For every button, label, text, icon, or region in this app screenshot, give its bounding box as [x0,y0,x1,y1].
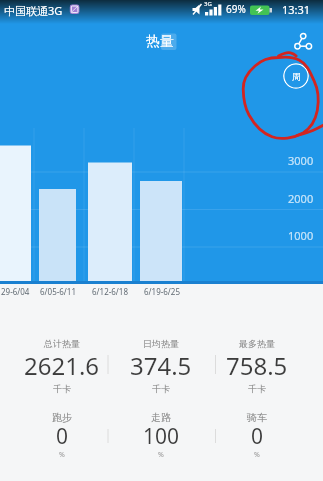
button[interactable]: 周 [283,63,309,89]
staticText: 骑车 [247,411,267,424]
staticText: 2000 [288,191,314,206]
staticText: 6/19-6/25 [144,286,180,297]
staticText: % [158,450,164,460]
staticText: 3G [204,0,212,8]
staticText: 日均热量 [143,338,179,349]
staticText: 13:31 [282,2,311,17]
staticText: 周 [292,71,301,82]
staticText: 374.5 [130,349,192,382]
staticText: 走路 [151,411,171,424]
staticText: 6/05-6/11 [40,286,76,297]
staticText: 6/12-6/18 [92,286,128,297]
staticText: 2621.6 [24,349,100,382]
staticText: 29-6/04 [1,286,30,297]
staticText: 千卡 [248,383,266,394]
staticText: 0 [56,422,69,451]
staticText: 3000 [288,153,314,168]
staticText: 0 [251,422,264,451]
staticText: 758.5 [226,349,288,382]
staticText: 100 [143,422,180,451]
staticText: % [59,450,65,460]
staticText: 最多热量 [239,338,275,349]
button[interactable] [291,29,315,53]
staticText: % [254,450,260,460]
staticText: 千卡 [152,383,170,394]
staticText: 跑步 [52,411,72,424]
staticText: 千卡 [53,383,71,394]
staticText: 1000 [288,228,314,243]
staticText: 热量 [146,33,174,51]
staticText: 69% [226,2,246,16]
staticText: 中国联通3G [4,3,63,18]
staticText: 总计热量 [44,338,80,349]
